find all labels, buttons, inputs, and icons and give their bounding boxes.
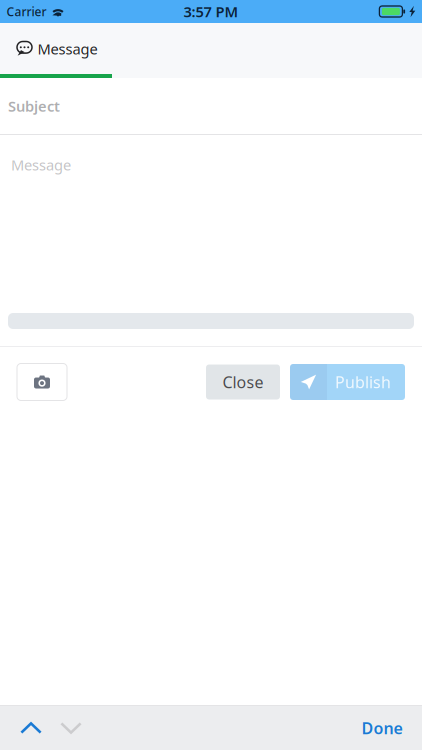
button[interactable]: Done [352,706,412,750]
button[interactable]: Close [206,364,280,399]
button[interactable]: Next field [52,706,90,750]
staticText: 3:57 PM [183,2,238,21]
staticText: Carrier [6,3,46,19]
staticText: Subject [8,96,60,116]
staticText: Publish [335,371,391,393]
staticText: Message [11,155,71,174]
button[interactable]: Publish [290,364,405,400]
staticText: Done [361,717,402,739]
button[interactable]: Previous field [10,706,52,750]
staticText: Message [37,39,97,58]
button[interactable]: Message [0,23,422,78]
button[interactable]: Add photo [17,363,67,400]
staticText: Close [222,371,263,393]
